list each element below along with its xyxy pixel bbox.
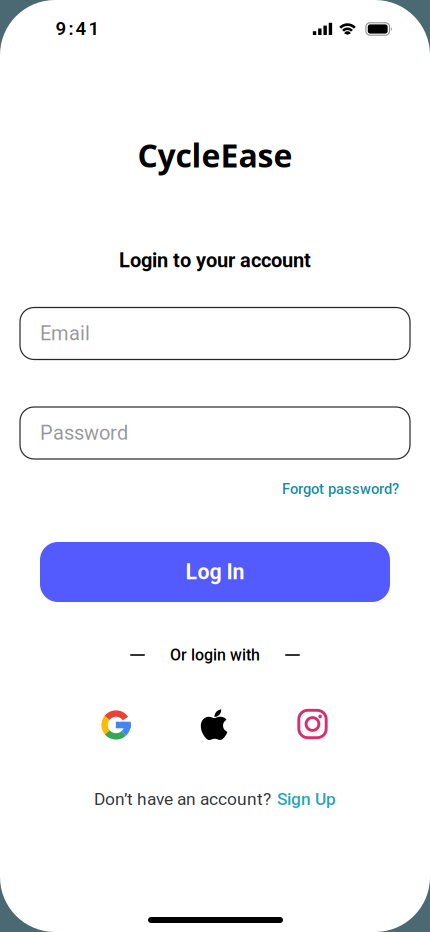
staticText: CycleEase xyxy=(137,133,292,177)
staticText: Or login with xyxy=(170,646,260,664)
button[interactable]: Log in with Apple xyxy=(199,709,229,740)
button[interactable]: Log in with Google xyxy=(101,710,131,740)
staticText: Sign Up xyxy=(277,789,336,809)
button[interactable]: Sign Up xyxy=(277,789,336,809)
staticText: Don’t have an account? xyxy=(94,789,271,809)
staticText: 9:41 xyxy=(55,18,99,39)
staticText: Email xyxy=(40,322,90,345)
staticText: Forgot password? xyxy=(282,481,399,497)
button[interactable]: Log in with Instagram xyxy=(297,708,327,739)
button[interactable]: Log In xyxy=(40,542,390,602)
staticText: Password xyxy=(40,422,128,444)
button[interactable]: Password xyxy=(20,407,410,459)
staticText: Log In xyxy=(185,560,244,584)
button[interactable]: Email xyxy=(20,307,410,359)
button[interactable]: Forgot password? xyxy=(282,481,399,497)
staticText: Login to your account xyxy=(119,249,311,272)
